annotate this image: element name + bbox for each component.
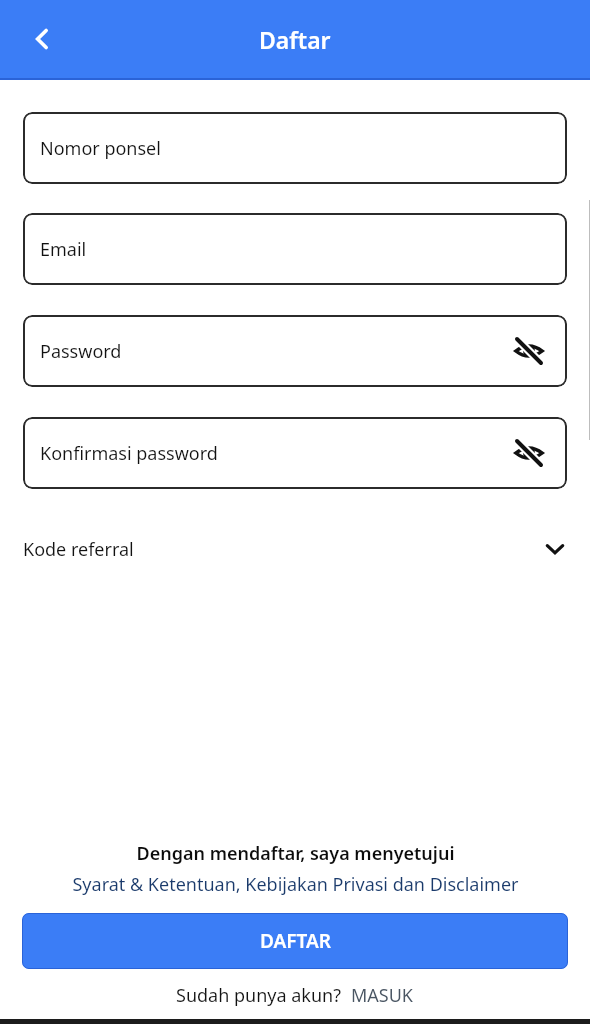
- button[interactable]: Email: [23, 213, 567, 285]
- staticText: Nomor ponsel: [40, 136, 161, 161]
- staticText: Dengan mendaftar, saya menyetujui: [136, 841, 455, 866]
- staticText: DAFTAR: [260, 928, 331, 954]
- staticText: Konfirmasi password: [40, 441, 218, 466]
- button[interactable]: DAFTAR: [22, 913, 568, 969]
- button[interactable]: Show password: [507, 329, 551, 373]
- staticText: Password: [40, 339, 122, 364]
- staticText: Sudah punya akun?: [176, 983, 342, 1008]
- button[interactable]: Syarat & Ketentuan, Kebijakan Privasi da…: [72, 872, 519, 897]
- button[interactable]: Nomor ponsel: [23, 112, 567, 184]
- staticText: MASUK: [351, 983, 414, 1008]
- button[interactable]: Back: [18, 15, 66, 63]
- staticText: Syarat & Ketentuan, Kebijakan Privasi da…: [72, 872, 519, 897]
- button[interactable]: MASUK: [351, 983, 414, 1008]
- button[interactable]: Konfirmasi password: [23, 417, 567, 489]
- button[interactable]: Password: [23, 315, 567, 387]
- staticText: Daftar: [259, 24, 331, 55]
- button[interactable]: Kode referral: [0, 523, 590, 575]
- button[interactable]: Show password: [507, 431, 551, 475]
- staticText: Kode referral: [23, 537, 134, 562]
- staticText: Email: [40, 237, 87, 262]
